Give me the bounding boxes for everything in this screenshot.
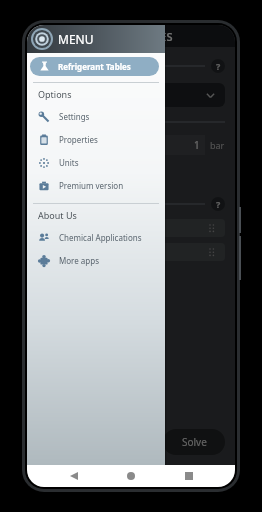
button[interactable]: Units (27, 151, 165, 174)
staticText: REFRIGERANT TABLES (59, 29, 173, 44)
button[interactable]: Premium version (27, 174, 165, 197)
staticText: Premium version (59, 180, 124, 191)
button[interactable]: Home (120, 465, 142, 487)
button[interactable]: Chemical Applications (27, 226, 165, 249)
staticText: 1 (194, 138, 200, 152)
button[interactable]: Help (211, 59, 225, 73)
button[interactable]: Help (211, 197, 225, 211)
staticText: About Us (38, 209, 77, 221)
button[interactable] (37, 219, 225, 237)
staticText: MENU (58, 31, 94, 47)
button[interactable]: Back (63, 465, 85, 487)
staticText: ? (216, 60, 221, 72)
staticText: Units (59, 157, 79, 168)
button[interactable]: More apps (27, 249, 165, 272)
staticText: Refrigerant Tables (58, 61, 131, 72)
button[interactable] (37, 243, 225, 261)
staticText: Settings (59, 111, 90, 122)
button[interactable]: 1 (133, 135, 205, 155)
button[interactable] (37, 83, 225, 107)
staticText: More apps (59, 255, 99, 266)
button[interactable]: Properties (27, 128, 165, 151)
button[interactable]: Refrigerant Tables (30, 57, 159, 76)
staticText: Options (38, 88, 72, 100)
button[interactable]: Solve (163, 429, 225, 455)
staticText: bar (210, 139, 225, 151)
button[interactable]: Settings (27, 105, 165, 128)
button[interactable]: Recents (178, 465, 200, 487)
staticText: Chemical Applications (59, 232, 142, 243)
staticText: Solve (182, 435, 207, 449)
staticText: Properties (59, 134, 98, 145)
staticText: ? (216, 198, 221, 210)
